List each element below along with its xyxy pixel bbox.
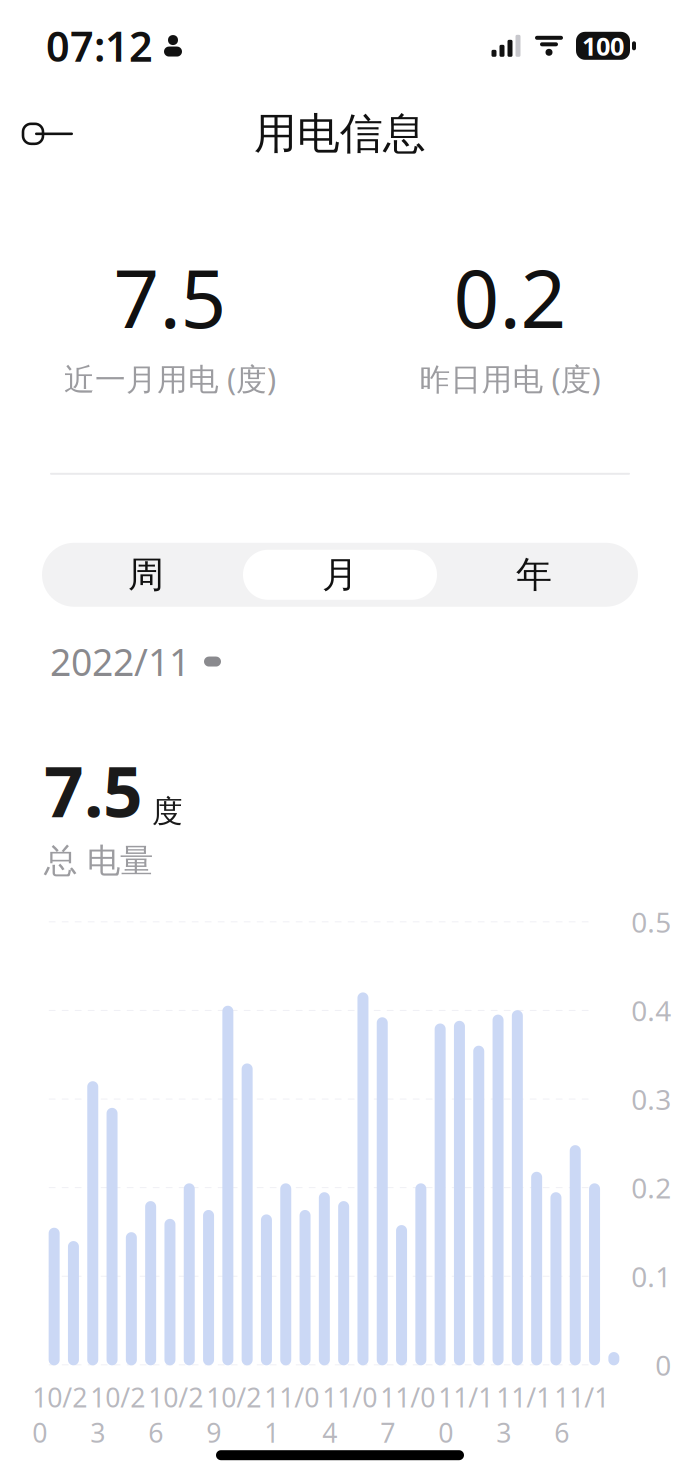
staticText: 11/13 bbox=[496, 1379, 551, 1450]
staticText: 100 bbox=[582, 29, 624, 63]
staticText: 11/16 bbox=[554, 1379, 609, 1450]
staticText: 0.3 bbox=[631, 1080, 671, 1118]
staticText: 11/01 bbox=[264, 1379, 319, 1450]
staticText: 总 电量 bbox=[44, 840, 153, 881]
staticText: 2022/11 bbox=[50, 637, 190, 686]
staticText: 周 bbox=[128, 553, 164, 597]
staticText: 年 bbox=[516, 553, 552, 597]
staticText: 11/10 bbox=[438, 1379, 493, 1450]
staticText: 月 bbox=[322, 553, 358, 597]
staticText: 7.5 bbox=[113, 244, 226, 350]
staticText: 11/07 bbox=[380, 1379, 435, 1450]
button[interactable]: 月 bbox=[243, 550, 437, 600]
staticText: 0.1 bbox=[631, 1258, 671, 1295]
staticText: 0 bbox=[655, 1346, 671, 1383]
button[interactable]: 返回 bbox=[18, 98, 90, 170]
staticText: 7.5 bbox=[44, 744, 143, 836]
staticText: 10/29 bbox=[206, 1379, 261, 1450]
staticText: 0.2 bbox=[631, 1169, 671, 1206]
staticText: 10/26 bbox=[148, 1379, 203, 1450]
staticText: 用电信息 bbox=[254, 108, 426, 160]
staticText: 10/20 bbox=[32, 1379, 87, 1450]
staticText: 昨日用电 (度) bbox=[419, 358, 600, 399]
staticText: 0.4 bbox=[631, 992, 671, 1029]
staticText: 11/04 bbox=[322, 1379, 377, 1450]
staticText: 07:12 bbox=[46, 18, 153, 73]
staticText: 0.2 bbox=[453, 244, 566, 350]
button[interactable]: 周 bbox=[49, 550, 243, 600]
button[interactable]: 年 bbox=[437, 550, 631, 600]
staticText: 0.5 bbox=[631, 903, 671, 940]
staticText: 度 bbox=[152, 793, 183, 830]
staticText: 10/23 bbox=[90, 1379, 145, 1450]
button[interactable]: 2022/11 bbox=[50, 637, 221, 686]
staticText: 近一月用电 (度) bbox=[64, 358, 276, 399]
